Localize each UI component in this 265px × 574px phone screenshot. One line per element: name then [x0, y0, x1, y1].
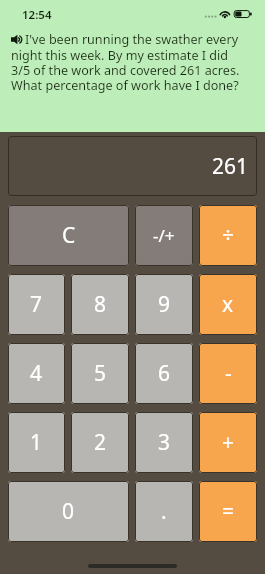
- staticText: 7: [30, 290, 43, 319]
- staticText: 4: [30, 359, 43, 388]
- staticText: +: [222, 428, 235, 457]
- staticText: 🔊I've been running the swather every nig…: [11, 31, 248, 94]
- button[interactable]: =: [199, 481, 257, 542]
- staticText: 0: [62, 497, 75, 526]
- button[interactable]: .: [135, 481, 193, 542]
- button[interactable]: C: [8, 205, 129, 266]
- button[interactable]: 5: [71, 343, 129, 404]
- button[interactable]: 6: [135, 343, 193, 404]
- button[interactable]: 3: [135, 412, 193, 473]
- staticText: 2: [94, 428, 107, 457]
- button[interactable]: 0: [8, 481, 129, 542]
- staticText: -: [225, 359, 232, 388]
- button[interactable]: +: [199, 412, 257, 473]
- staticText: .: [161, 497, 167, 526]
- staticText: -/+: [153, 224, 175, 247]
- staticText: C: [62, 221, 76, 250]
- button[interactable]: 4: [8, 343, 65, 404]
- staticText: 261: [212, 152, 249, 181]
- staticText: ÷: [222, 221, 235, 250]
- button[interactable]: 7: [8, 274, 65, 335]
- button[interactable]: 8: [71, 274, 129, 335]
- button[interactable]: 2: [71, 412, 129, 473]
- staticText: 5: [94, 359, 107, 388]
- button[interactable]: 1: [8, 412, 65, 473]
- staticText: x: [222, 290, 234, 319]
- button[interactable]: x: [199, 274, 257, 335]
- button[interactable]: 9: [135, 274, 193, 335]
- staticText: 8: [94, 290, 107, 319]
- button[interactable]: -/+: [135, 205, 193, 266]
- staticText: 12:54: [22, 7, 52, 23]
- staticText: 6: [158, 359, 171, 388]
- staticText: 9: [158, 290, 171, 319]
- staticText: 1: [30, 428, 43, 457]
- staticText: =: [222, 497, 235, 526]
- staticText: 3: [158, 428, 171, 457]
- button[interactable]: -: [199, 343, 257, 404]
- button[interactable]: ÷: [199, 205, 257, 266]
